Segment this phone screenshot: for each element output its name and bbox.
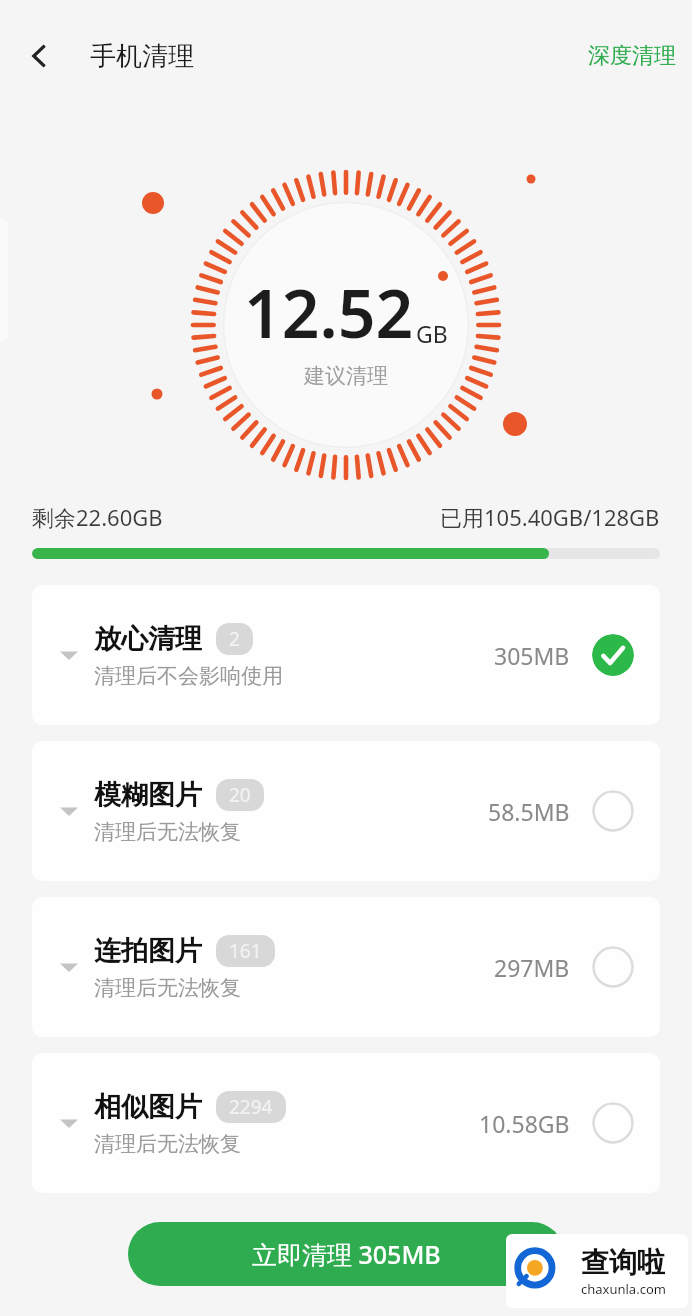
staticText: 305MB	[494, 640, 570, 671]
staticText: GB	[416, 318, 448, 349]
staticText: 连拍图片	[94, 934, 202, 968]
staticText: 2	[229, 626, 240, 652]
staticText: 深度清理	[588, 42, 676, 70]
staticText: 58.5MB	[488, 796, 570, 827]
button[interactable]: Not selected	[592, 790, 634, 832]
staticText: 放心清理	[94, 622, 202, 656]
button[interactable]: 相似图片	[32, 1053, 660, 1193]
staticText: 20	[229, 782, 251, 808]
staticText: 相似图片	[94, 1090, 202, 1124]
staticText: 建议清理	[304, 363, 388, 389]
staticText: 清理后无法恢复	[94, 975, 241, 1001]
button[interactable]: 模糊图片	[32, 741, 660, 881]
button[interactable]: Not selected	[592, 1102, 634, 1144]
staticText: 清理后无法恢复	[94, 819, 241, 845]
button[interactable]: Back	[8, 24, 72, 88]
staticText: 剩余22.60GB	[32, 502, 163, 532]
staticText: 297MB	[494, 952, 570, 983]
button[interactable]: 放心清理	[32, 585, 660, 725]
staticText: 查询啦	[581, 1245, 665, 1280]
staticText: 手机清理	[90, 40, 194, 73]
staticText: 161	[229, 938, 262, 964]
staticText: 立即清理 305MB	[252, 1237, 441, 1271]
staticText: 10.58GB	[479, 1108, 570, 1139]
button[interactable]: Selected	[592, 634, 634, 676]
staticText: 已用105.40GB/128GB	[440, 502, 660, 532]
button[interactable]: 深度清理	[572, 32, 692, 80]
button[interactable]: 连拍图片	[32, 897, 660, 1037]
staticText: 清理后不会影响使用	[94, 663, 283, 689]
staticText: 12.52	[244, 267, 414, 357]
staticText: 2294	[229, 1094, 273, 1120]
button[interactable]: 立即清理 305MB	[128, 1222, 564, 1286]
staticText: 清理后无法恢复	[94, 1131, 241, 1157]
staticText: 模糊图片	[94, 778, 202, 812]
button[interactable]: Not selected	[592, 946, 634, 988]
staticText: chaxunla.com	[581, 1280, 666, 1298]
